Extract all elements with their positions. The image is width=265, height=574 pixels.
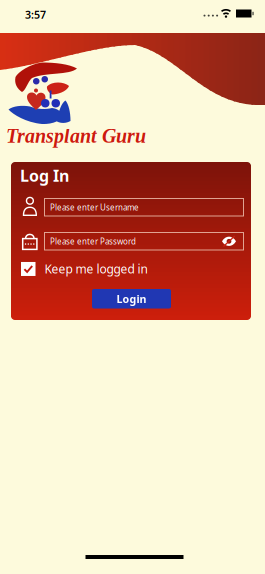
- staticText: Please enter Username: [50, 202, 139, 213]
- staticText: Log In: [20, 165, 69, 186]
- button[interactable]: Login: [92, 289, 171, 308]
- staticText: 3:57: [25, 7, 46, 22]
- staticText: Login: [116, 292, 146, 306]
- button[interactable]: Keep me logged in: [21, 261, 147, 277]
- button[interactable]: Password: [44, 232, 244, 250]
- staticText: Please enter Password: [50, 236, 136, 247]
- staticText: Keep me logged in: [44, 261, 147, 277]
- staticText: Transplant Guru: [6, 125, 146, 147]
- button[interactable]: Show password: [222, 236, 236, 246]
- button[interactable]: Username: [44, 198, 244, 216]
